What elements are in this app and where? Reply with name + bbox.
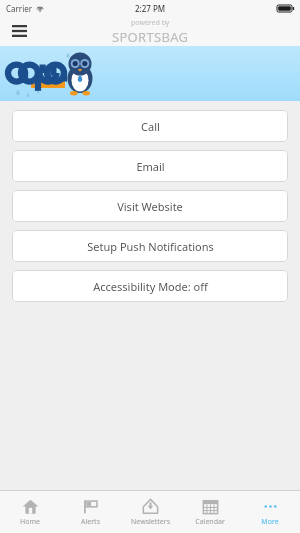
staticText: 2:27 PM [135,3,166,14]
button[interactable]: Visit Website [12,190,288,222]
button[interactable]: Home [0,491,60,533]
button[interactable]: Call [12,110,288,142]
staticText: Newsletters [131,517,170,527]
button[interactable]: Newsletters [120,491,180,533]
button[interactable]: Menu [4,16,34,46]
staticText: Email [136,159,165,174]
button[interactable]: Email [12,150,288,182]
button[interactable]: Accessibility Mode: off [12,270,288,302]
button[interactable]: Setup Push Notifications [12,230,288,262]
button[interactable]: Calendar [180,491,240,533]
staticText: Carrier [6,3,33,14]
staticText: Setup Push Notifications [87,239,214,254]
staticText: Alerts [81,517,100,527]
staticText: Visit Website [117,199,183,214]
staticText: Calendar [195,517,225,527]
staticText: Call [141,119,160,134]
staticText: SPORTSBAG [112,28,189,46]
button[interactable]: More [240,491,300,533]
staticText: Accessibility Mode: off [93,279,208,294]
staticText: Home [20,517,40,527]
staticText: More [261,517,279,527]
button[interactable]: Alerts [60,491,120,533]
staticText: powered by [131,18,170,28]
